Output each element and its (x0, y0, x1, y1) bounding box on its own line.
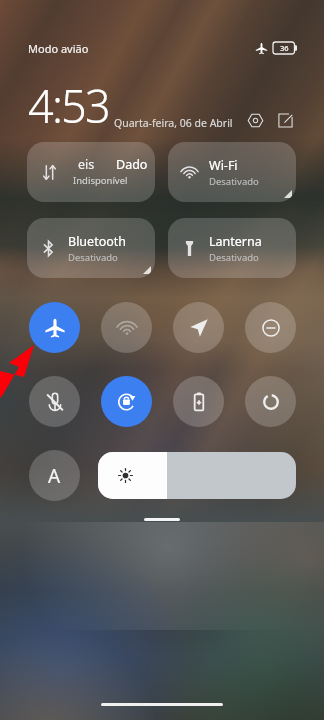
button[interactable]: Wi-Fi (168, 142, 296, 202)
staticText: Desativado (209, 175, 259, 188)
staticText: Wi-Fi (209, 157, 238, 174)
button[interactable]: Bluetooth (27, 218, 155, 278)
button[interactable]: Brightness (98, 452, 296, 499)
button[interactable]: Lanterna (168, 218, 296, 278)
staticText: Desativado (209, 251, 259, 264)
button[interactable]: Battery saver (173, 376, 224, 427)
staticText: Indisponível (73, 174, 128, 187)
button[interactable]: Airplane mode (29, 302, 80, 353)
button[interactable]: Auto brightness (29, 450, 80, 501)
staticText: A (48, 463, 61, 489)
button[interactable]: Edit (273, 108, 297, 132)
staticText: Modo avião (28, 41, 89, 56)
staticText: 4:53 (28, 75, 109, 136)
staticText: eis (78, 156, 95, 173)
button[interactable]: Do not disturb (245, 302, 296, 353)
staticText: Bluetooth (68, 233, 127, 250)
button[interactable]: Location (173, 302, 224, 353)
button[interactable]: Sync (245, 376, 296, 427)
staticText: 36 (280, 43, 289, 53)
staticText: Quarta-feira, 06 de Abril (114, 116, 233, 130)
button[interactable]: Mute (29, 376, 80, 427)
button[interactable]: Auto rotate (101, 376, 152, 427)
staticText: Desativado (68, 251, 118, 264)
button[interactable]: Wi-Fi (101, 302, 152, 353)
staticText: Dado (116, 156, 148, 173)
button[interactable]: Settings (243, 108, 267, 132)
button[interactable]: eis (27, 142, 155, 202)
staticText: Lanterna (209, 233, 262, 250)
